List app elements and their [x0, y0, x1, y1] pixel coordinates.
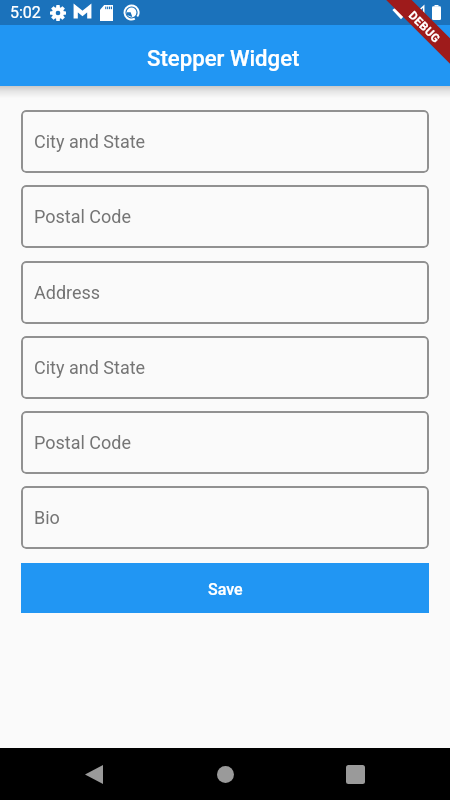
- staticText: Stepper Widget: [147, 45, 300, 71]
- button[interactable]: Recents: [331, 750, 379, 798]
- staticText: Save: [208, 580, 243, 599]
- button[interactable]: Address: [21, 261, 429, 324]
- button[interactable]: Home: [201, 750, 249, 798]
- button[interactable]: City and State: [21, 110, 429, 173]
- button[interactable]: Bio: [21, 486, 429, 549]
- staticText: 5:02: [10, 3, 41, 22]
- button[interactable]: Postal Code: [21, 185, 429, 248]
- staticText: Postal Code: [34, 432, 131, 453]
- staticText: City and State: [34, 357, 146, 378]
- staticText: Bio: [34, 507, 60, 528]
- button[interactable]: City and State: [21, 336, 429, 399]
- staticText: Postal Code: [34, 206, 131, 227]
- staticText: Address: [34, 282, 101, 303]
- button[interactable]: Save: [21, 563, 429, 613]
- staticText: City and State: [34, 131, 146, 152]
- button[interactable]: Postal Code: [21, 411, 429, 474]
- button[interactable]: Back: [70, 750, 118, 798]
- staticText: DEBUG: [407, 8, 443, 45]
